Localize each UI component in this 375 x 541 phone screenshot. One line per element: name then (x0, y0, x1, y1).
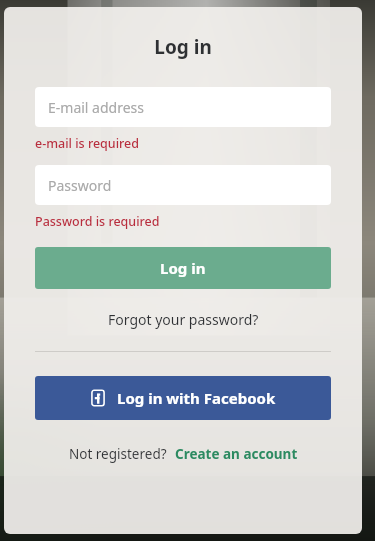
staticText: Password (48, 176, 112, 195)
button[interactable]: E-mail address (35, 87, 331, 127)
staticText: Create an account (175, 445, 298, 463)
staticText: Log in (154, 34, 212, 60)
staticText: e-mail is required (35, 135, 140, 152)
button[interactable]: Create an account (175, 445, 298, 463)
staticText: E-mail address (48, 98, 144, 117)
staticText: Password is required (35, 213, 160, 230)
staticText: Not registered? (69, 445, 167, 463)
button[interactable]: Password (35, 165, 331, 205)
button[interactable]: Log in with Facebook (35, 376, 331, 420)
staticText: Log in (160, 258, 206, 278)
staticText: Forgot your password? (108, 310, 259, 329)
button[interactable]: Forgot your password? (100, 306, 267, 333)
staticText: Log in with Facebook (117, 388, 276, 408)
button[interactable]: Log in (35, 247, 331, 289)
